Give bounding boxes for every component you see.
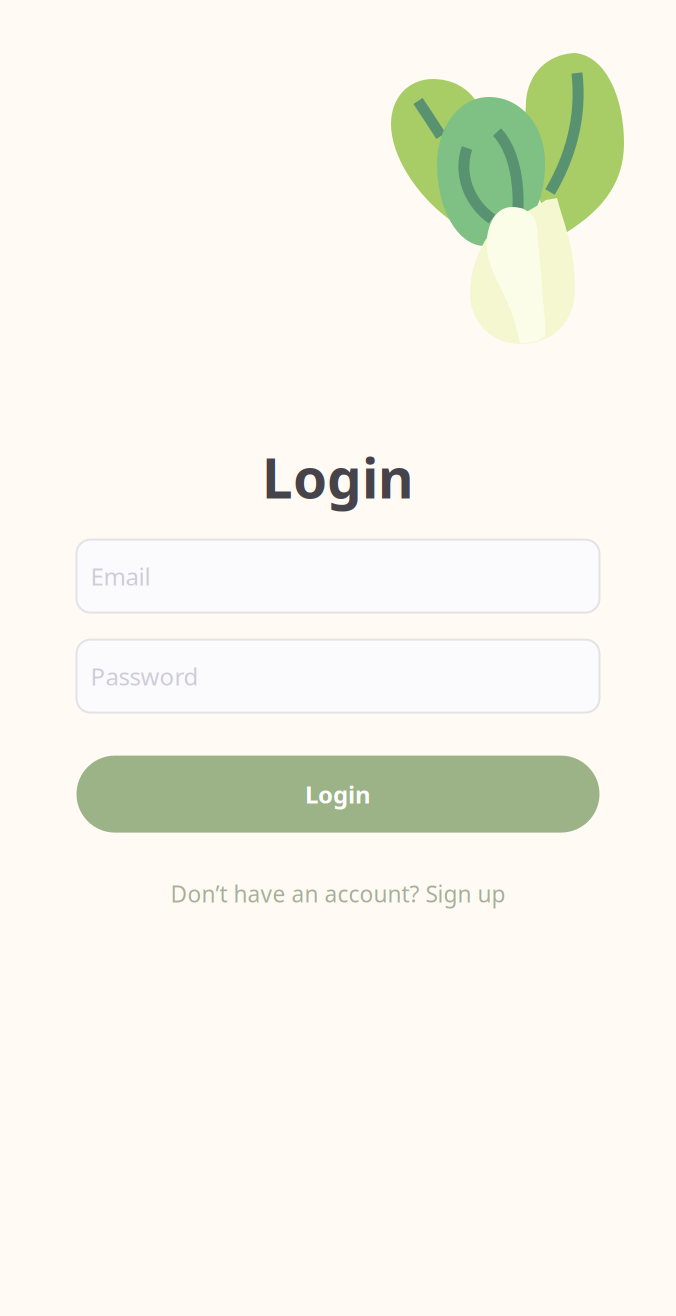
button[interactable]: Login	[76, 756, 599, 833]
button[interactable]: Email	[76, 540, 599, 613]
button[interactable]: Password	[76, 640, 599, 713]
staticText: Login	[262, 441, 414, 514]
staticText: Don’t have an account? Sign up	[170, 879, 505, 909]
staticText: Login	[305, 778, 371, 810]
staticText: Password	[90, 660, 198, 692]
button[interactable]: Don’t have an account? Sign up	[170, 879, 505, 909]
staticText: Email	[90, 560, 150, 592]
